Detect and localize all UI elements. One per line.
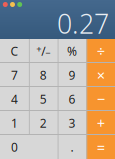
button[interactable]: Change sign bbox=[29, 39, 58, 63]
button[interactable]: 4 bbox=[0, 87, 29, 111]
staticText: / bbox=[41, 43, 45, 59]
button[interactable]: 7 bbox=[0, 63, 29, 87]
staticText: − bbox=[45, 47, 50, 59]
button[interactable]: . bbox=[57, 135, 86, 159]
button[interactable]: 6 bbox=[57, 87, 86, 111]
button[interactable]: 3 bbox=[57, 111, 86, 135]
staticText: − bbox=[97, 89, 105, 109]
staticText: + bbox=[36, 43, 41, 55]
button[interactable]: 0 bbox=[0, 135, 57, 159]
button[interactable]: − bbox=[86, 87, 115, 111]
staticText: + bbox=[97, 113, 105, 133]
button[interactable]: Zoom window bbox=[17, 2, 22, 7]
staticText: 6 bbox=[68, 91, 75, 107]
button[interactable]: + bbox=[86, 111, 115, 135]
staticText: 2 bbox=[40, 115, 47, 131]
staticText: 4 bbox=[11, 91, 18, 107]
button[interactable]: 2 bbox=[29, 111, 58, 135]
button[interactable]: × bbox=[86, 63, 115, 87]
button[interactable]: ÷ bbox=[86, 39, 115, 63]
staticText: 0.27 bbox=[57, 6, 109, 41]
button[interactable]: Minimise window bbox=[10, 2, 15, 7]
staticText: % bbox=[67, 43, 77, 59]
staticText: . bbox=[70, 139, 73, 155]
staticText: 8 bbox=[40, 67, 47, 83]
staticText: × bbox=[97, 65, 105, 85]
staticText: 0 bbox=[11, 139, 18, 155]
button[interactable]: 5 bbox=[29, 87, 58, 111]
button[interactable]: 1 bbox=[0, 111, 29, 135]
button[interactable]: = bbox=[86, 135, 115, 159]
button[interactable]: C bbox=[0, 39, 29, 63]
staticText: 9 bbox=[68, 67, 75, 83]
button[interactable]: 9 bbox=[57, 63, 86, 87]
staticText: 1 bbox=[11, 115, 18, 131]
staticText: ÷ bbox=[97, 41, 105, 61]
button[interactable]: Close window bbox=[3, 2, 8, 7]
staticText: C bbox=[10, 43, 18, 59]
button[interactable]: % bbox=[57, 39, 86, 63]
staticText: = bbox=[97, 137, 105, 157]
staticText: 7 bbox=[11, 67, 18, 83]
staticText: 3 bbox=[68, 115, 75, 131]
staticText: 5 bbox=[40, 91, 47, 107]
button[interactable]: 8 bbox=[29, 63, 58, 87]
